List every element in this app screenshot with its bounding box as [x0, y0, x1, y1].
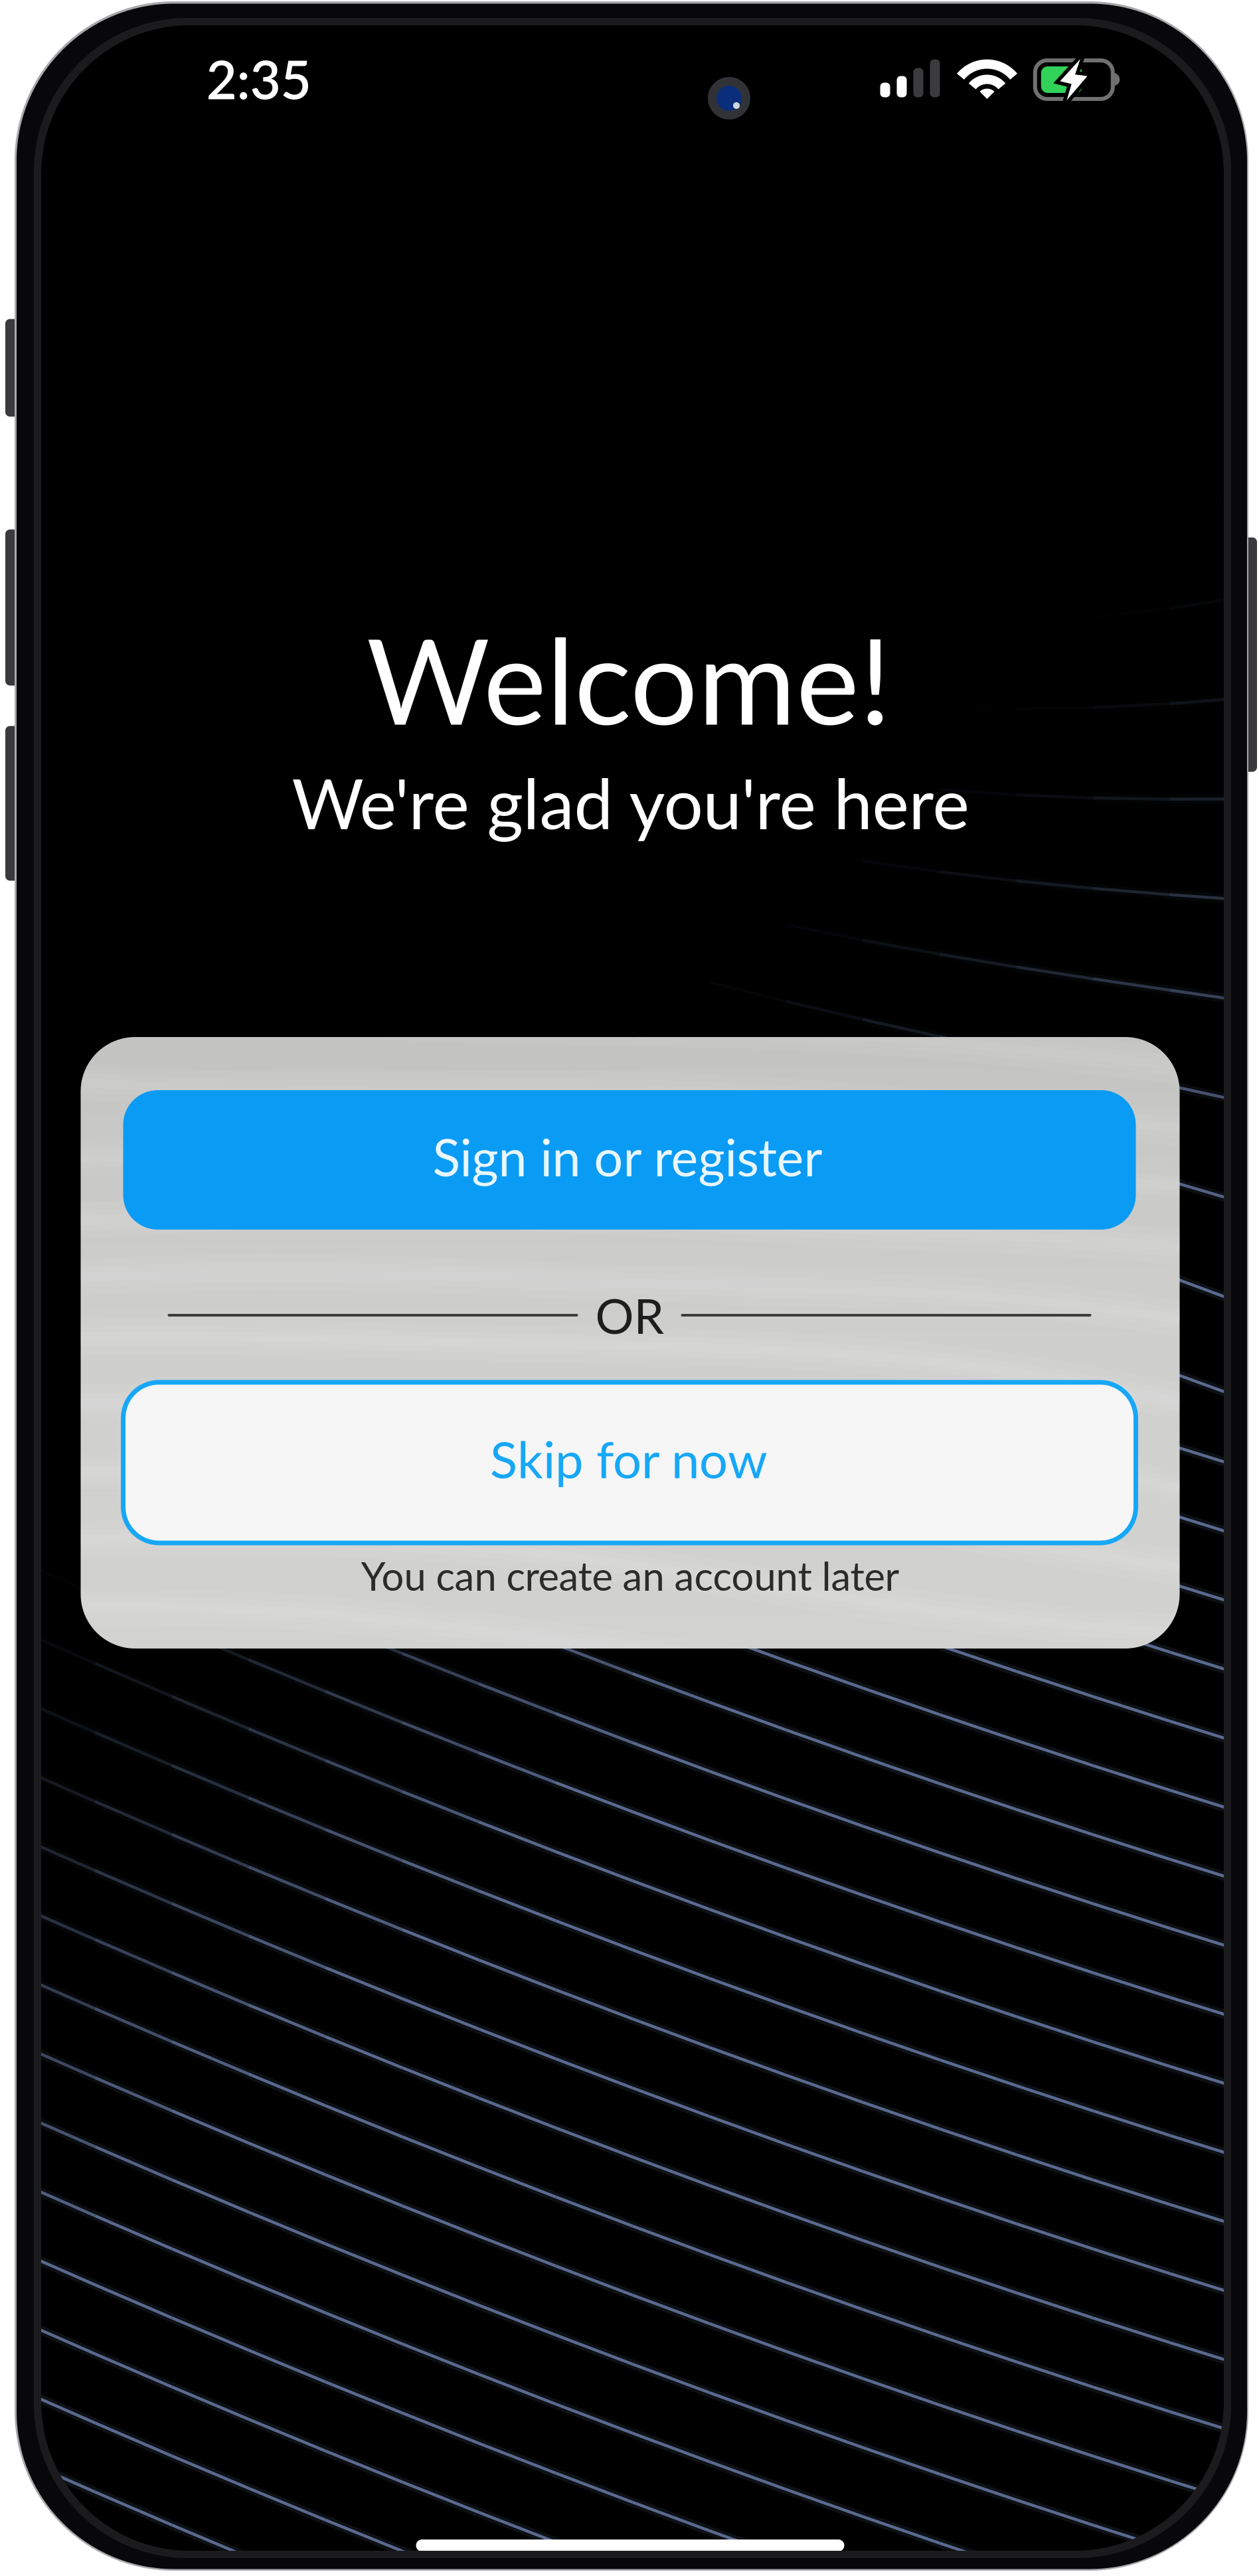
staticText: Sign in or register: [433, 1126, 822, 1187]
button[interactable]: Skip for now: [123, 1382, 1136, 1543]
staticText: We're glad you're here: [292, 761, 969, 844]
staticText: Skip for now: [490, 1428, 768, 1489]
staticText: 2:35: [206, 47, 311, 111]
staticText: You can create an account later: [361, 1552, 899, 1599]
button[interactable]: Sign in or register: [123, 1090, 1136, 1230]
staticText: OR: [595, 1286, 664, 1344]
staticText: Welcome!: [367, 607, 891, 750]
